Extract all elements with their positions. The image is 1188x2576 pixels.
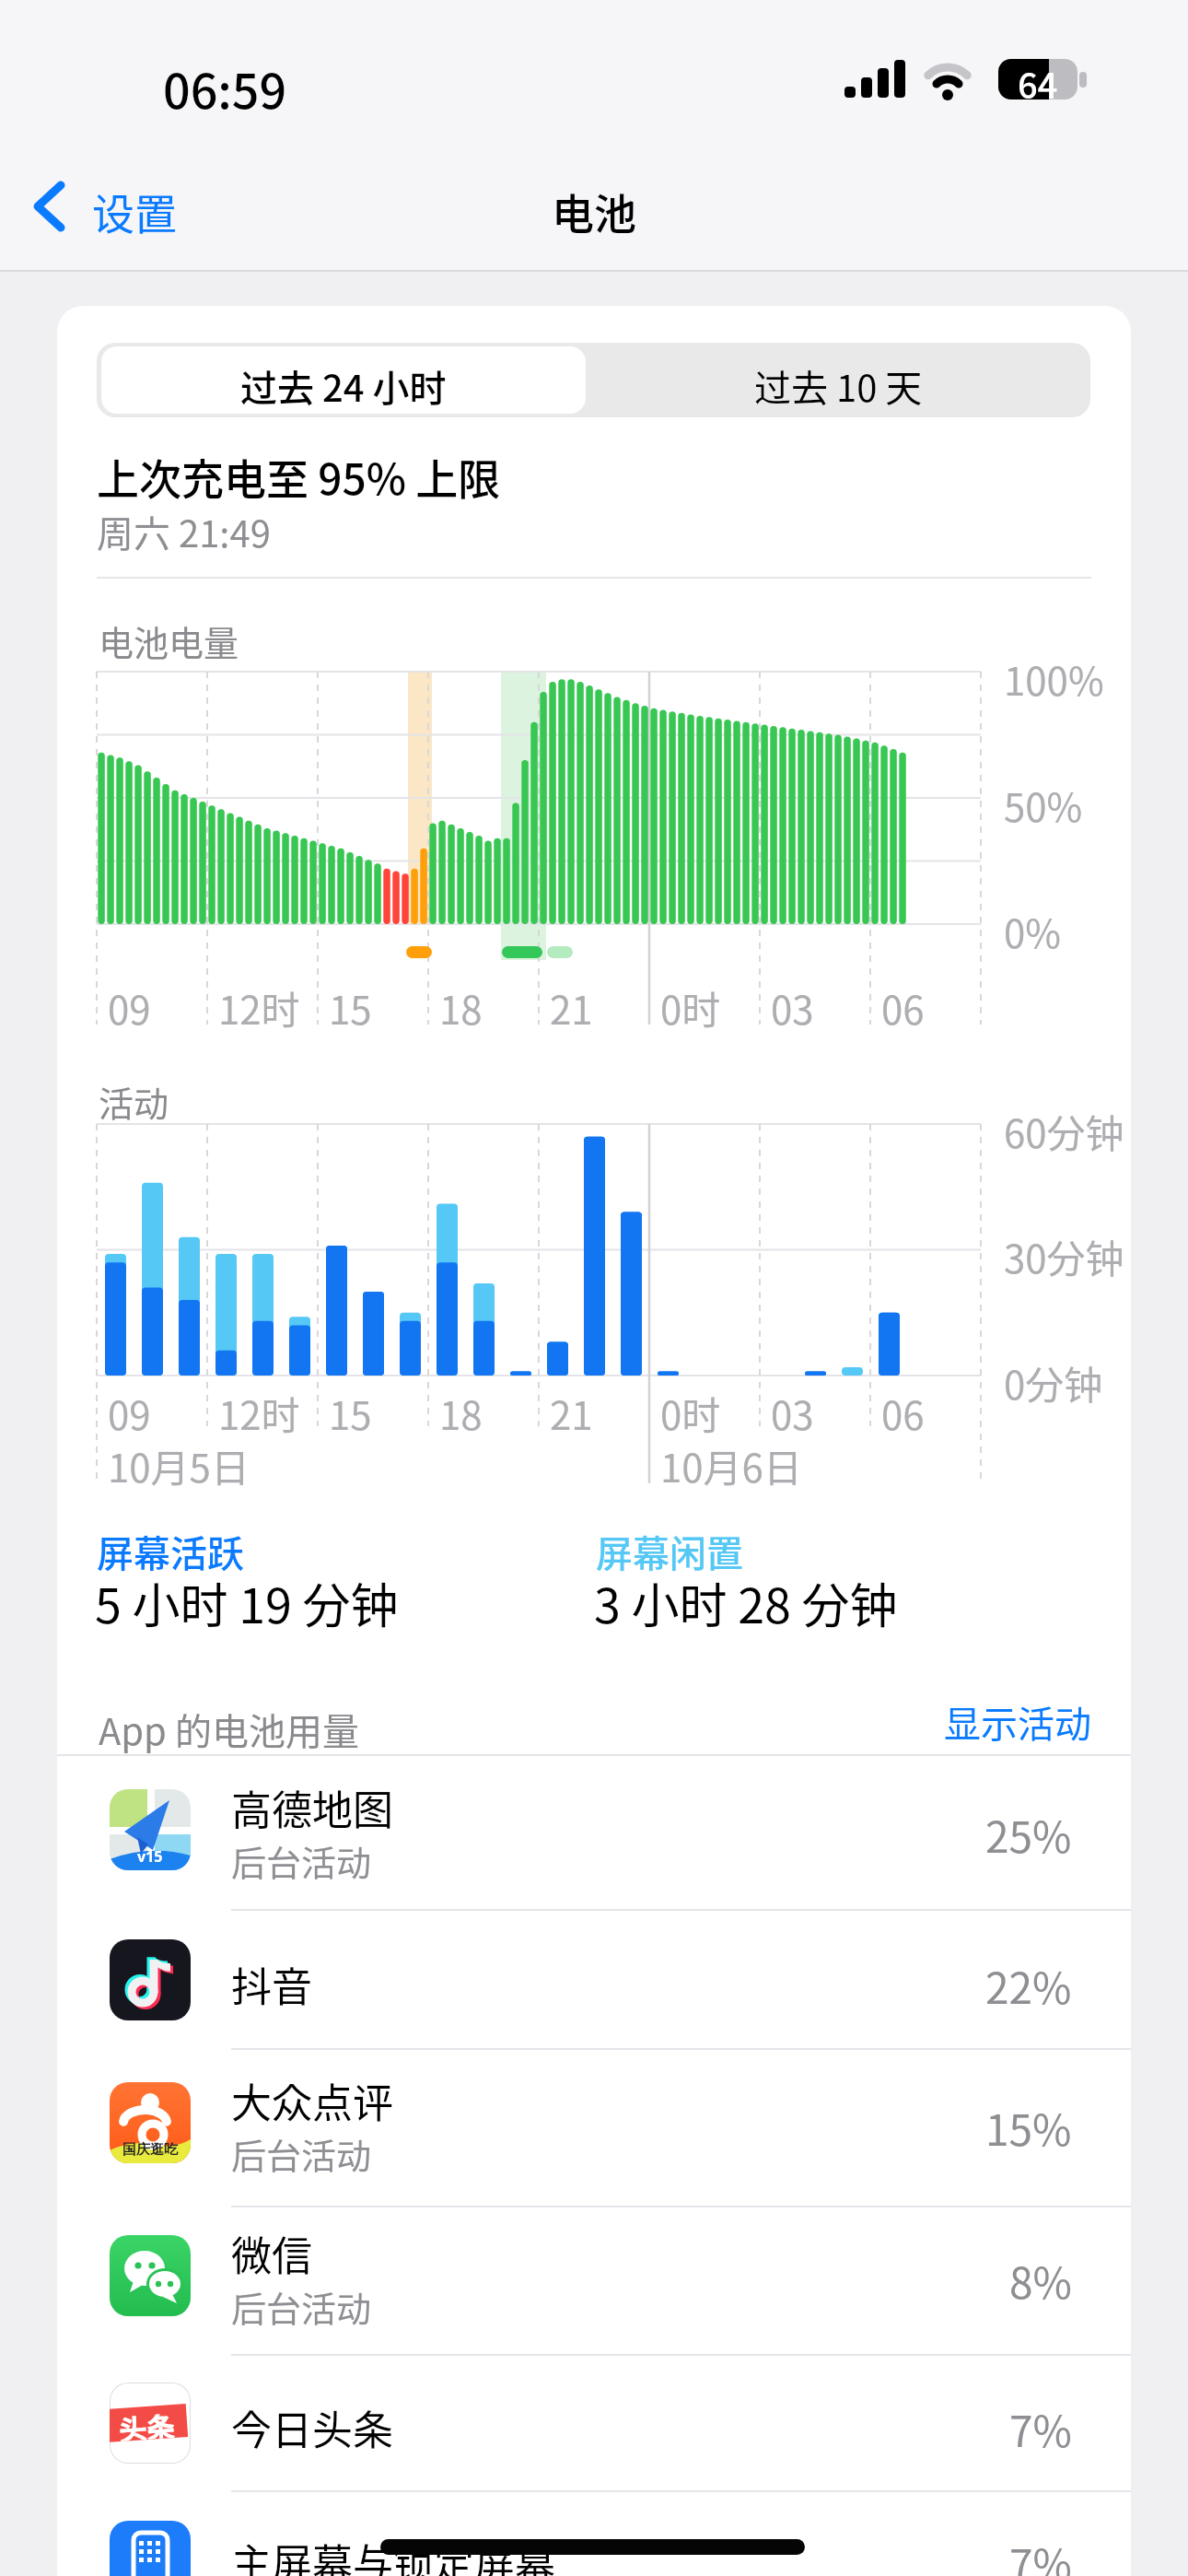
staticText: 高德地图	[231, 1778, 393, 1837]
staticText: 活动	[99, 1076, 169, 1127]
staticText: 10月6日	[660, 1437, 802, 1493]
staticText: 50%	[1004, 777, 1083, 833]
staticText: 显示活动	[944, 1695, 1091, 1747]
staticText: 15%	[985, 2097, 1072, 2159]
staticText: 后台活动	[231, 2281, 372, 2332]
staticText: 国庆逛吃	[122, 2141, 178, 2159]
staticText: 上次充电至 95% 上限	[97, 446, 501, 508]
button[interactable]	[57, 2207, 1131, 2354]
staticText: 0分钟	[1004, 1354, 1103, 1411]
staticText: 0%	[1004, 903, 1061, 959]
staticText: 头条	[118, 2405, 175, 2442]
staticText: 18	[439, 1385, 483, 1441]
staticText: 0时	[660, 979, 721, 1036]
staticText: 8%	[1009, 2250, 1072, 2312]
button[interactable]	[586, 346, 1090, 414]
staticText: 微信	[231, 2224, 312, 2283]
button[interactable]	[57, 2491, 1131, 2576]
staticText: 屏幕闲置	[596, 1525, 743, 1578]
staticText: 64	[1018, 58, 1058, 100]
staticText: 06:59	[163, 53, 287, 123]
staticText: 抖音	[231, 1955, 312, 2014]
staticText: 10月5日	[108, 1437, 250, 1493]
staticText: 21	[550, 1385, 593, 1441]
staticText: 18	[439, 979, 483, 1036]
staticText: 30分钟	[1004, 1228, 1124, 1284]
button[interactable]	[57, 2355, 1131, 2490]
button[interactable]	[57, 1756, 1131, 1910]
staticText: 12时	[218, 979, 300, 1036]
button[interactable]	[101, 346, 586, 414]
staticText: 7%	[1009, 2532, 1072, 2576]
staticText: 设置	[92, 181, 177, 242]
button[interactable]	[28, 175, 230, 240]
staticText: 5 小时 19 分钟	[95, 1568, 399, 1637]
staticText: 大众点评	[231, 2071, 393, 2130]
staticText: App 的电池用量	[99, 1703, 359, 1756]
staticText: 100%	[1004, 650, 1104, 707]
staticText: 60分钟	[1004, 1103, 1124, 1159]
staticText: 06	[881, 979, 925, 1036]
staticText: v15	[137, 1846, 163, 1867]
staticText: 周六 21:49	[97, 505, 271, 558]
staticText: 3 小时 28 分钟	[594, 1568, 898, 1637]
staticText: 过去 10 天	[754, 359, 923, 413]
staticText: 22%	[985, 1955, 1072, 2017]
staticText: 过去 24 小时	[240, 359, 447, 413]
staticText: 06	[881, 1385, 925, 1441]
staticText: 后台活动	[231, 2128, 372, 2179]
button[interactable]	[57, 1910, 1131, 2049]
staticText: 21	[550, 979, 593, 1036]
staticText: 电池电量	[99, 615, 239, 666]
staticText: 15	[329, 979, 372, 1036]
staticText: 0时	[660, 1385, 721, 1441]
staticText: 12时	[218, 1385, 300, 1441]
staticText: 主屏幕与锁定屏幕	[231, 2532, 555, 2576]
staticText: 7%	[1009, 2398, 1072, 2460]
staticText: 电池	[552, 181, 636, 242]
staticText: 屏幕活跃	[97, 1525, 244, 1578]
staticText: 03	[771, 1385, 814, 1441]
staticText: 09	[108, 979, 151, 1036]
staticText: 03	[771, 979, 814, 1036]
staticText: 今日头条	[231, 2398, 393, 2457]
button[interactable]: 显示活动	[815, 1695, 1091, 1747]
staticText: 09	[108, 1385, 151, 1441]
staticText: 15	[329, 1385, 372, 1441]
staticText: 25%	[985, 1804, 1072, 1866]
button[interactable]	[57, 2049, 1131, 2207]
staticText: 后台活动	[231, 1835, 372, 1886]
